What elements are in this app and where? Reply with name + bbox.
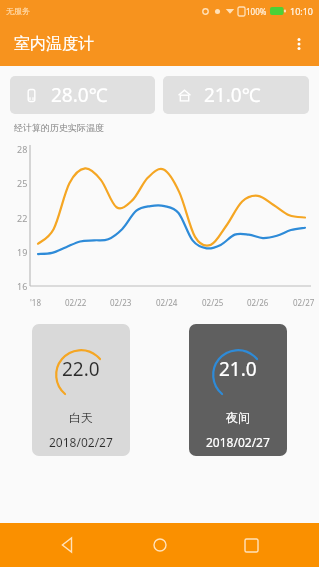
staticText: 02/24 <box>156 297 178 308</box>
staticText: 22.0 <box>62 356 100 382</box>
button[interactable]: 28.0℃ <box>10 76 155 114</box>
button[interactable]: 21.0℃ <box>163 76 309 114</box>
staticText: 02/23 <box>110 297 132 308</box>
staticText: 无服务 <box>6 6 30 16</box>
staticText: 2018/02/27 <box>49 434 113 450</box>
staticText: 夜间 <box>226 410 250 425</box>
staticText: 白天 <box>69 410 93 425</box>
button[interactable]: Back <box>44 523 92 567</box>
staticText: 02/25 <box>202 297 224 308</box>
staticText: 21.0 <box>219 356 257 382</box>
staticText: 25 <box>17 177 28 189</box>
button[interactable]: 22.0 <box>32 324 130 456</box>
button[interactable]: Home <box>136 523 184 567</box>
staticText: 21.0℃ <box>204 82 261 108</box>
staticText: 19 <box>17 246 28 258</box>
staticText: 02/26 <box>247 297 269 308</box>
staticText: 28.0℃ <box>51 82 108 108</box>
button[interactable]: More options <box>279 24 319 64</box>
staticText: 2018/02/27 <box>206 434 270 450</box>
staticText: 16 <box>17 280 28 292</box>
staticText: '18 <box>30 297 41 308</box>
button[interactable]: Recent apps <box>227 523 275 567</box>
staticText: 经计算的历史实际温度 <box>14 122 104 133</box>
staticText: 10:10 <box>290 5 314 17</box>
staticText: 22 <box>17 212 28 224</box>
staticText: 02/22 <box>65 297 87 308</box>
staticText: 28 <box>17 143 28 155</box>
staticText: 室内温度计 <box>14 34 94 54</box>
staticText: 100% <box>246 6 267 17</box>
button[interactable]: 21.0 <box>189 324 287 456</box>
staticText: 02/27 <box>293 297 315 308</box>
